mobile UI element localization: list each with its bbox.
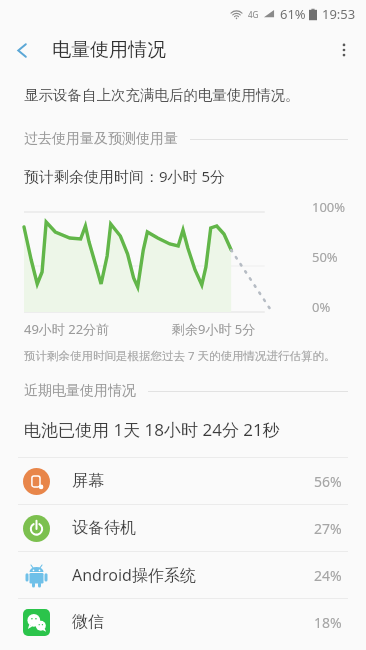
staticText: 4G <box>248 9 259 20</box>
staticText: 预计剩余使用时间：9小时 5分 <box>24 166 226 186</box>
staticText: 27% <box>314 519 342 538</box>
staticText: 屏幕 <box>72 471 104 491</box>
staticText: 设备待机 <box>72 518 136 538</box>
staticText: 剩余9小时 5分 <box>172 320 256 338</box>
button[interactable]: 屏幕 <box>0 458 366 504</box>
staticText: 预计剩余使用时间是根据您过去 7 天的使用情况进行估算的。 <box>24 348 336 364</box>
button[interactable]: More options <box>322 28 366 72</box>
button[interactable]: Back <box>0 28 44 72</box>
button[interactable]: 设备待机 <box>0 505 366 551</box>
staticText: 18% <box>314 613 342 632</box>
staticText: 50% <box>312 248 338 266</box>
button[interactable]: Android操作系统 <box>0 552 366 598</box>
staticText: 56% <box>314 472 342 491</box>
staticText: 100% <box>312 198 346 216</box>
staticText: 过去使用量及预测使用量 <box>24 130 178 148</box>
staticText: 24% <box>314 566 342 585</box>
staticText: 49小时 22分前 <box>24 320 110 338</box>
staticText: 电量使用情况 <box>52 38 166 62</box>
staticText: 0% <box>312 298 331 316</box>
staticText: 近期电量使用情况 <box>24 382 136 400</box>
staticText: 显示设备自上次充满电后的电量使用情况。 <box>24 86 300 104</box>
staticText: 微信 <box>72 612 104 632</box>
staticText: 61% <box>280 5 306 23</box>
button[interactable]: 微信 <box>0 599 366 645</box>
staticText: Android操作系统 <box>72 564 196 586</box>
staticText: 19:53 <box>322 5 356 23</box>
staticText: 电池已使用 1天 18小时 24分 21秒 <box>24 418 280 441</box>
